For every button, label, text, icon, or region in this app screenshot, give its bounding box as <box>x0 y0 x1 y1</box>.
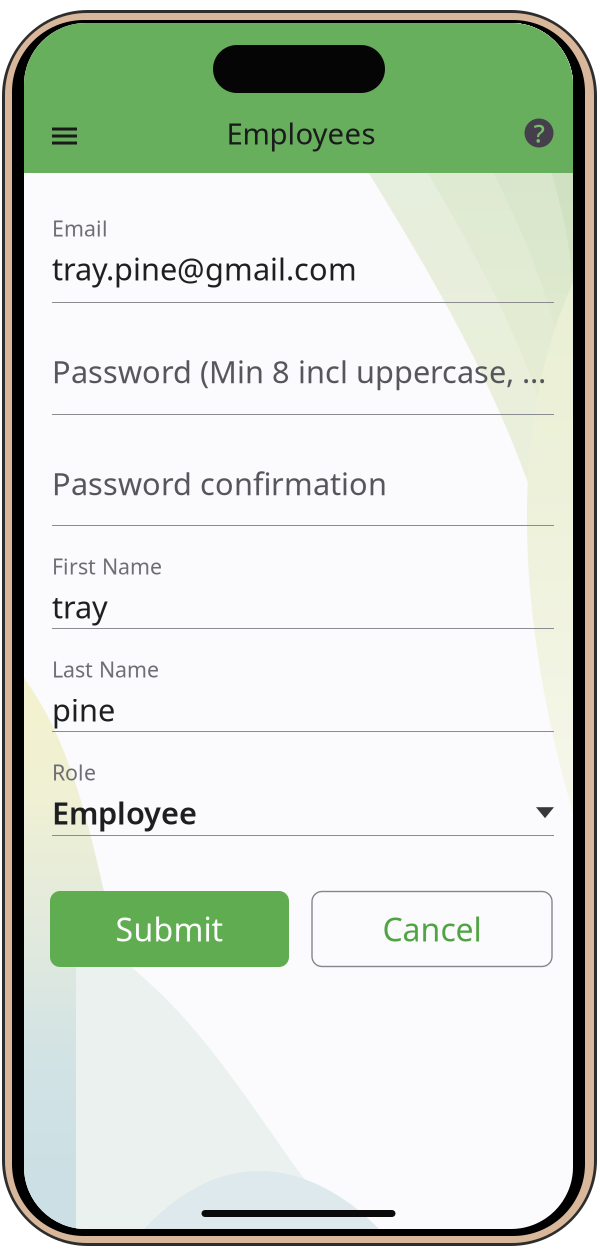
staticText: Employee <box>52 792 197 833</box>
staticText: Email <box>52 214 108 242</box>
button[interactable]: Cancel <box>312 891 552 966</box>
staticText: Password (Min 8 incl uppercase, number, … <box>52 351 554 392</box>
staticText: tray.pine@gmail.com <box>52 248 357 289</box>
staticText: tray <box>52 586 108 627</box>
staticText: Employees <box>226 113 375 152</box>
staticText: pine <box>52 689 115 730</box>
staticText: Cancel <box>382 908 481 950</box>
staticText: Role <box>52 758 96 786</box>
button[interactable]: Help <box>507 109 571 157</box>
button[interactable]: Submit <box>50 891 289 967</box>
staticText: Password confirmation <box>52 463 387 504</box>
button[interactable]: Menu <box>31 109 95 157</box>
staticText: First Name <box>52 552 162 580</box>
staticText: Last Name <box>52 655 159 683</box>
staticText: ? <box>533 116 544 150</box>
staticText: Submit <box>115 908 223 950</box>
